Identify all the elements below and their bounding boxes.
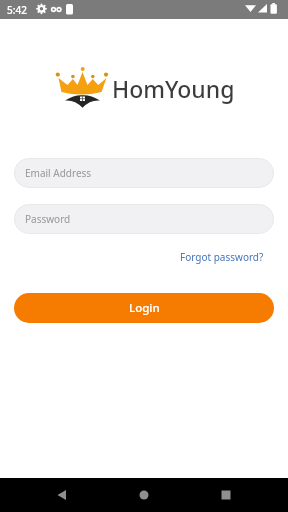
staticText: Login xyxy=(129,300,160,316)
staticText: Password xyxy=(25,212,71,226)
staticText: Email Address xyxy=(25,166,92,180)
button[interactable]: Password xyxy=(14,204,274,234)
button[interactable] xyxy=(192,478,288,512)
staticText: HomYoung xyxy=(112,73,235,104)
button[interactable]: Email Address xyxy=(14,158,274,188)
staticText: 5:42 xyxy=(7,3,27,17)
button[interactable]: Forgot password? xyxy=(180,250,264,264)
button[interactable]: Login xyxy=(14,293,274,323)
button[interactable] xyxy=(0,478,96,512)
button[interactable] xyxy=(96,478,192,512)
